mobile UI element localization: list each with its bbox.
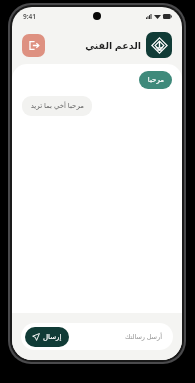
staticText: إرسال — [43, 333, 62, 341]
staticText: الدعم الفني — [85, 39, 141, 52]
staticText: أرسل رسالتك — [125, 332, 162, 341]
button[interactable]: مرحبا أخي بما تريد — [22, 96, 92, 116]
button[interactable]: مرحبا — [139, 71, 172, 89]
button[interactable]: إرسال — [25, 327, 69, 347]
staticText: مرحبا — [147, 76, 164, 84]
button[interactable]: شعار التطبيق — [146, 32, 172, 58]
staticText: مرحبا أخي بما تريد — [30, 101, 84, 111]
button[interactable]: تسجيل الخروج — [22, 34, 45, 57]
staticText: 9:41 — [23, 12, 36, 21]
